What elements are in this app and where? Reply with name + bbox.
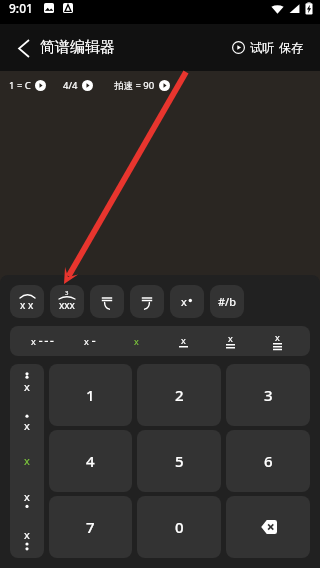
button[interactable]: x	[18, 326, 66, 356]
staticText: 5	[175, 451, 184, 471]
staticText: x x	[20, 298, 34, 312]
staticText: 1 = C	[9, 79, 31, 92]
staticText: 试听	[250, 40, 274, 55]
button[interactable]: x	[66, 326, 113, 356]
staticText: x	[24, 418, 30, 433]
staticText: x	[181, 294, 187, 309]
staticText: xxx	[59, 298, 75, 312]
staticText: 9:01	[9, 0, 33, 16]
staticText: 2	[175, 385, 184, 405]
staticText: 4	[86, 451, 95, 471]
staticText: x	[181, 334, 186, 346]
staticText: 1	[86, 385, 95, 405]
button[interactable]: x	[10, 364, 44, 402]
staticText: x	[24, 379, 30, 394]
button[interactable]: x	[10, 402, 44, 441]
button[interactable]: Slur	[10, 285, 44, 318]
button[interactable]: x	[207, 326, 254, 356]
button[interactable]: Accidental	[210, 285, 244, 318]
staticText: 0	[175, 517, 184, 537]
button[interactable]: 拍速 = 90	[112, 76, 172, 95]
staticText: 4/4	[63, 79, 78, 92]
staticText: x	[134, 335, 139, 347]
button[interactable]: 试听	[230, 34, 276, 61]
button[interactable]: 7	[49, 496, 132, 558]
staticText: 拍速 = 90	[114, 79, 155, 92]
staticText: 3	[65, 289, 69, 297]
button[interactable]: 3	[226, 364, 310, 426]
staticText: x	[24, 453, 30, 468]
staticText: 7	[86, 517, 95, 537]
button[interactable]: x	[113, 326, 160, 356]
button[interactable]: 1	[49, 364, 132, 426]
button[interactable]: Tie2	[130, 285, 164, 318]
button[interactable]: x	[10, 441, 44, 480]
staticText: x	[31, 335, 36, 347]
button[interactable]: 5	[137, 430, 221, 492]
staticText: x	[228, 332, 233, 344]
button[interactable]: 4/4	[61, 76, 95, 95]
staticText: 简谱编辑器	[40, 38, 115, 57]
staticText: 3	[264, 385, 273, 405]
staticText: #/b	[218, 294, 236, 309]
button[interactable]: Back	[9, 33, 39, 63]
button[interactable]: Tie	[90, 285, 124, 318]
staticText: 6	[264, 451, 273, 471]
button[interactable]: Delete	[226, 496, 310, 558]
staticText: x	[24, 489, 30, 504]
button[interactable]: x	[10, 480, 44, 519]
staticText: x	[84, 335, 89, 347]
button[interactable]: 1 = C	[7, 76, 48, 95]
button[interactable]: 0	[137, 496, 221, 558]
staticText: x	[24, 527, 30, 542]
staticText: x	[275, 331, 280, 343]
button[interactable]: 4	[49, 430, 132, 492]
button[interactable]: Triplet	[50, 285, 84, 318]
button[interactable]: 2	[137, 364, 221, 426]
staticText: 保存	[279, 40, 303, 55]
button[interactable]: Dotted	[170, 285, 204, 318]
button[interactable]: x	[254, 326, 301, 356]
button[interactable]: x	[160, 326, 207, 356]
button[interactable]: 保存	[277, 34, 305, 61]
button[interactable]: 6	[226, 430, 310, 492]
button[interactable]: x	[10, 519, 44, 558]
